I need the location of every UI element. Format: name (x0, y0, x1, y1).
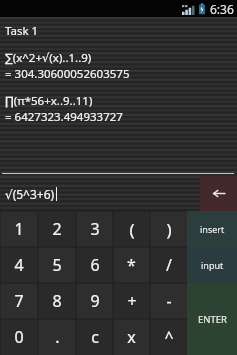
button[interactable]: ( (113, 211, 150, 247)
button[interactable]: + (113, 283, 150, 319)
staticText: ∑(x^2+√(x)..1..9) (5, 50, 92, 66)
button[interactable]: 3 (76, 211, 113, 247)
staticText: ( (129, 218, 135, 241)
staticText: 8 (52, 290, 62, 312)
staticText: x (127, 326, 136, 348)
staticText: c (91, 326, 99, 348)
button[interactable]: 7 (0, 283, 38, 319)
button[interactable]: 6 (76, 247, 113, 283)
staticText: = 304.30600052603575 (5, 66, 130, 82)
button[interactable]: 5 (38, 247, 76, 283)
staticText: insert (200, 223, 225, 235)
button[interactable]: 8 (38, 283, 76, 319)
staticText: √(5^3+6) (5, 186, 55, 202)
button[interactable]: / (150, 247, 187, 283)
staticText: 6 (90, 254, 100, 276)
button[interactable]: ENTER (187, 283, 237, 355)
staticText: 5 (52, 254, 62, 276)
button[interactable]: Backspace (200, 176, 237, 211)
staticText: / (166, 254, 172, 276)
button[interactable]: input (187, 247, 237, 283)
staticText: 7 (14, 290, 24, 312)
staticText: Task 1 (5, 23, 39, 39)
staticText: ENTER (198, 313, 227, 326)
staticText: * (127, 254, 136, 276)
staticText: + (127, 290, 137, 312)
staticText: ^ (164, 326, 174, 348)
staticText: ∏(π*56+x..9..11) (5, 93, 93, 109)
staticText: 9 (90, 290, 100, 312)
button[interactable]: 0 (0, 319, 38, 355)
button[interactable]: 9 (76, 283, 113, 319)
button[interactable]: 4 (0, 247, 38, 283)
staticText: 0 (14, 326, 24, 348)
staticText: 6:36 (210, 1, 234, 17)
staticText: . (55, 326, 60, 348)
staticText: 3 (90, 218, 100, 240)
button[interactable]: insert (187, 211, 237, 247)
button[interactable]: * (113, 247, 150, 283)
staticText: - (166, 290, 172, 312)
staticText: ) (166, 218, 172, 241)
button[interactable]: ) (150, 211, 187, 247)
button[interactable]: ^ (150, 319, 187, 355)
staticText: input (201, 259, 224, 271)
button[interactable]: c (76, 319, 113, 355)
staticText: 1 (14, 218, 24, 240)
staticText: = 6427323.494933727 (5, 109, 123, 125)
button[interactable]: 1 (0, 211, 38, 247)
button[interactable]: . (38, 319, 76, 355)
staticText: 2 (52, 218, 62, 240)
staticText: 4 (14, 254, 24, 276)
button[interactable]: x (113, 319, 150, 355)
button[interactable]: - (150, 283, 187, 319)
button[interactable]: 2 (38, 211, 76, 247)
